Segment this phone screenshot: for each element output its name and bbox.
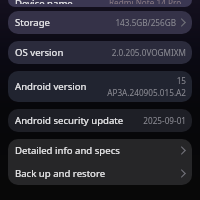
staticText: Detailed info and specs xyxy=(15,144,120,157)
button[interactable]: Detailed info and specs xyxy=(8,139,192,162)
button[interactable]: Back up and restore xyxy=(8,162,192,185)
button[interactable]: Device name xyxy=(8,0,192,7)
staticText: 2025-09-01 xyxy=(143,115,186,126)
staticText: AP3A.240905.015.A2 xyxy=(107,87,186,98)
button[interactable]: Storage xyxy=(8,11,192,34)
staticText: Android version xyxy=(15,80,87,93)
button[interactable]: OS version xyxy=(8,41,192,64)
button[interactable]: Android version xyxy=(8,71,192,102)
button[interactable]: Android security update xyxy=(8,109,192,132)
staticText: Storage xyxy=(15,16,50,29)
staticText: 143.5GB/256GB xyxy=(115,17,176,28)
staticText: 2.0.205.0VOGMIXM xyxy=(111,47,186,58)
staticText: 15 xyxy=(176,75,186,86)
staticText: Android security update xyxy=(15,114,124,127)
staticText: OS version xyxy=(15,46,64,59)
staticText: Device name xyxy=(15,0,73,4)
staticText: Back up and restore xyxy=(15,167,106,180)
staticText: Redmi Note 14 Pro xyxy=(109,0,182,4)
